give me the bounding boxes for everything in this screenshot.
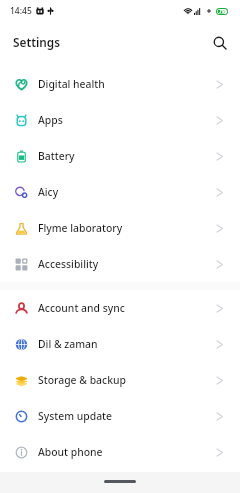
- button[interactable]: Flyme laboratory: [0, 210, 240, 246]
- staticText: Aicy: [38, 185, 59, 199]
- staticText: Flyme laboratory: [38, 221, 123, 235]
- staticText: Storage & backup: [38, 373, 126, 387]
- button[interactable]: System update: [0, 398, 240, 434]
- staticText: System update: [38, 409, 113, 423]
- button[interactable]: Dil & zaman: [0, 326, 240, 362]
- button[interactable]: Account and sync: [0, 290, 240, 326]
- staticText: 79: [219, 8, 225, 15]
- button[interactable]: Aicy: [0, 174, 240, 210]
- staticText: Dil & zaman: [38, 337, 98, 351]
- button[interactable]: Apps: [0, 102, 240, 138]
- staticText: Account and sync: [38, 301, 125, 315]
- staticText: Digital health: [38, 77, 105, 91]
- button[interactable]: Search: [208, 31, 232, 55]
- staticText: 14:45: [10, 5, 32, 17]
- button[interactable]: Battery: [0, 138, 240, 174]
- staticText: Battery: [38, 149, 75, 163]
- staticText: Accessibility: [38, 257, 99, 271]
- staticText: Apps: [38, 113, 63, 127]
- button[interactable]: About phone: [0, 434, 240, 470]
- button[interactable]: Accessibility: [0, 246, 240, 282]
- button[interactable]: Storage & backup: [0, 362, 240, 398]
- staticText: Settings: [13, 34, 61, 50]
- staticText: About phone: [38, 445, 103, 459]
- button[interactable]: Digital health: [0, 66, 240, 102]
